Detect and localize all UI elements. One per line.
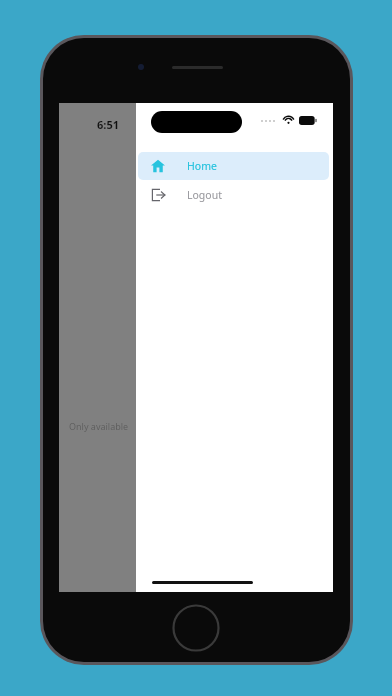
button[interactable]: Home	[138, 152, 329, 180]
other: Home	[151, 159, 165, 173]
other: Logout	[151, 188, 165, 202]
staticText: 6:51	[97, 117, 119, 132]
staticText: Logout	[187, 188, 222, 202]
staticText: Home	[187, 159, 217, 173]
staticText: Only available	[69, 420, 129, 432]
button[interactable]: Logout	[138, 180, 329, 210]
